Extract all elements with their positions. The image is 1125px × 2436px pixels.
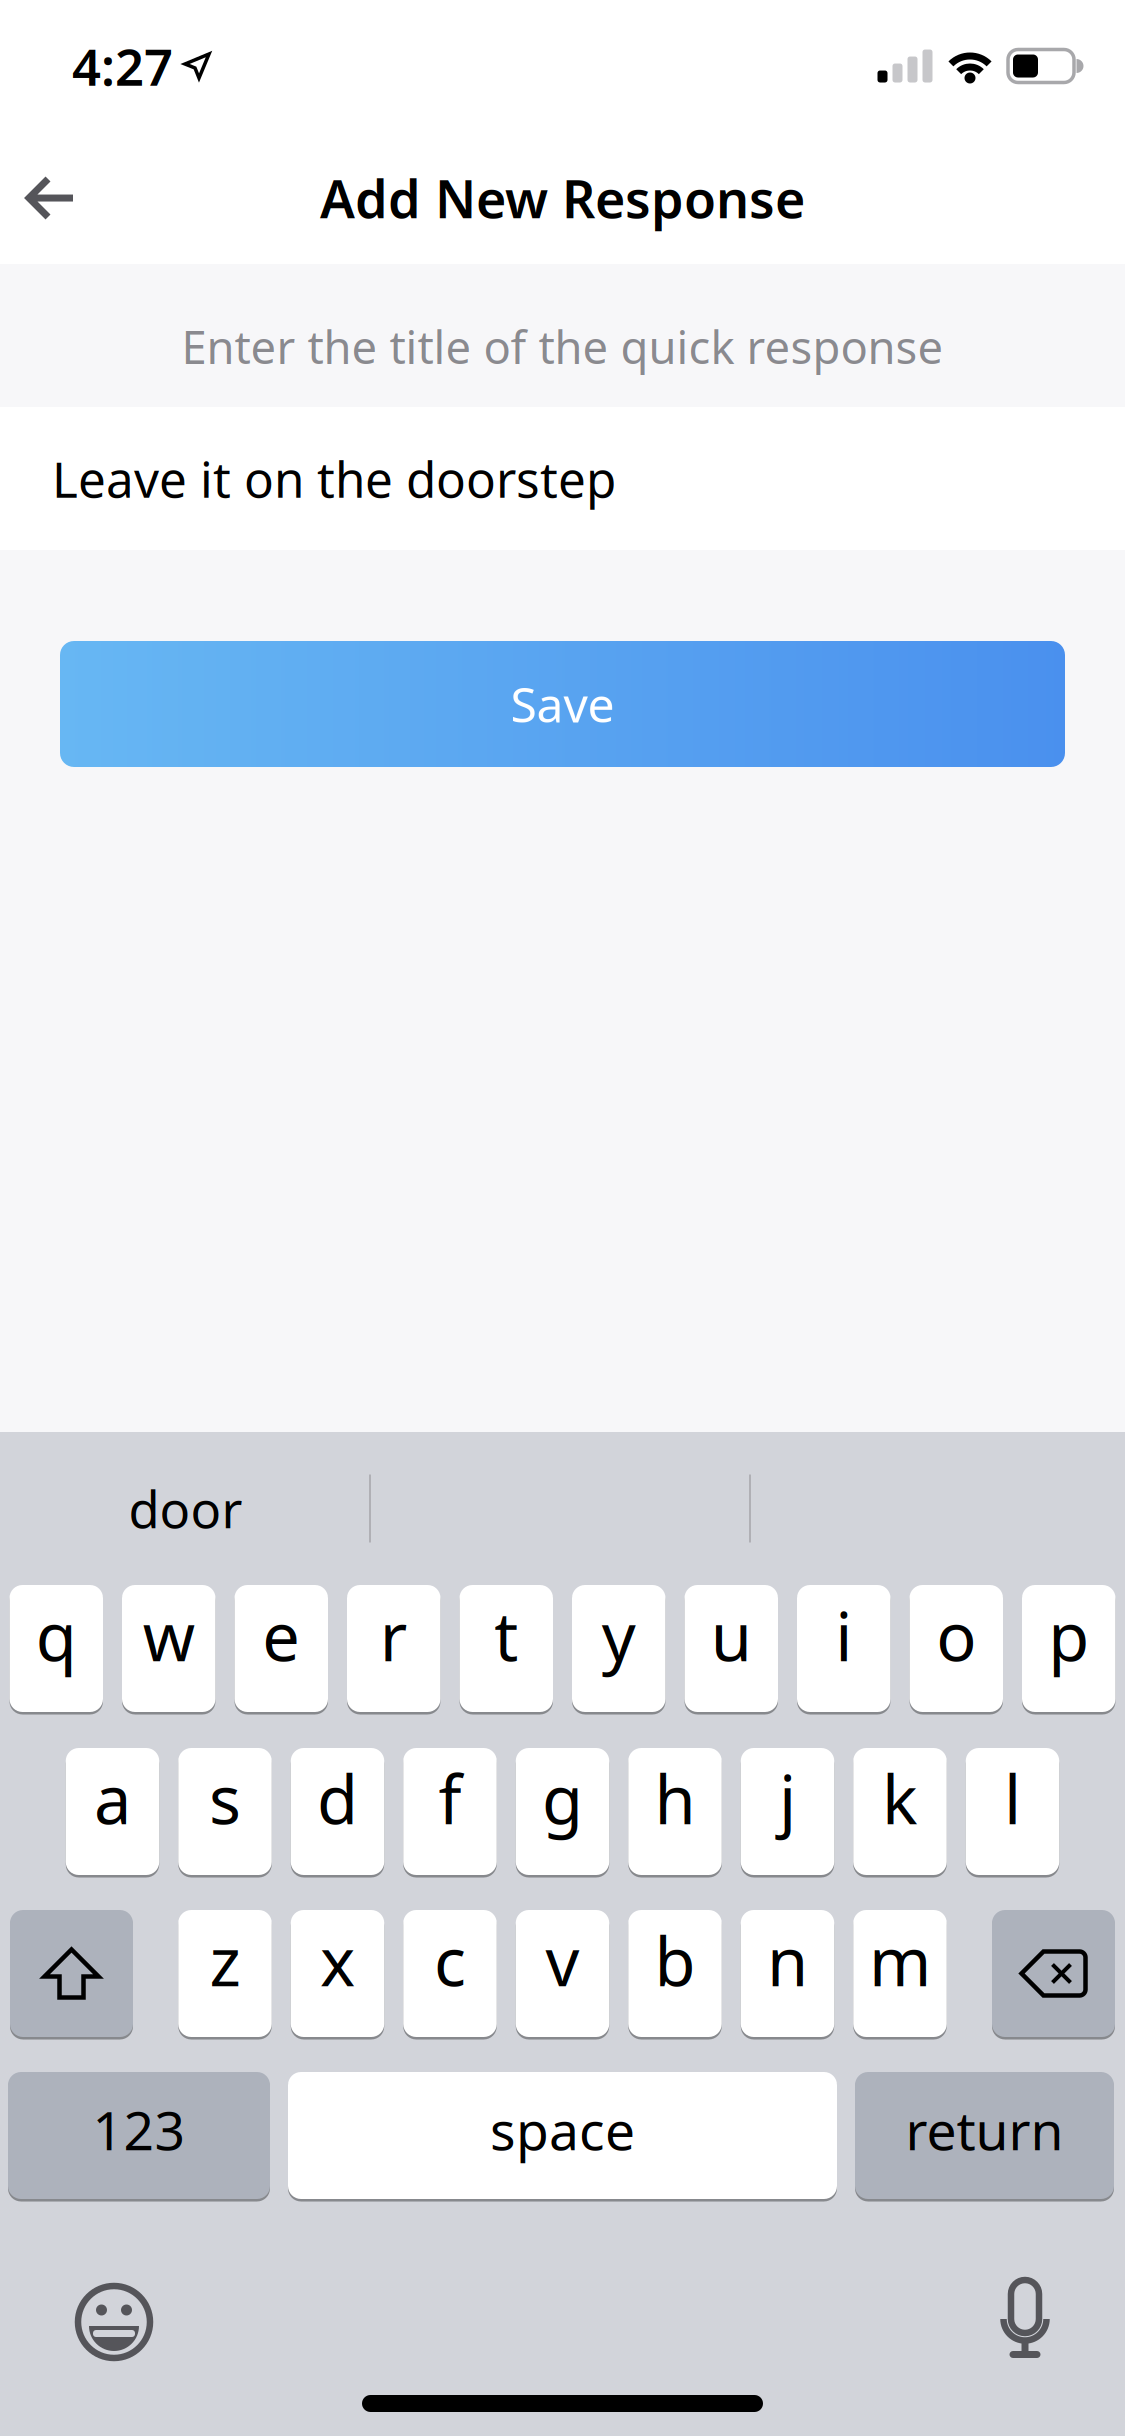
button[interactable]: z: [178, 1910, 272, 2037]
button[interactable]: g: [516, 1748, 609, 1875]
staticText: i: [835, 1591, 852, 1680]
staticText: Add New Response: [320, 163, 805, 233]
button[interactable]: Leave it on the doorstep: [0, 407, 1125, 550]
button[interactable]: return: [855, 2072, 1114, 2199]
button[interactable]: h: [628, 1748, 722, 1875]
button[interactable]: j: [741, 1748, 834, 1875]
button[interactable]: r: [347, 1585, 440, 1712]
staticText: j: [779, 1754, 796, 1843]
staticText: return: [905, 2094, 1063, 2165]
button[interactable]: n: [741, 1910, 834, 2037]
button[interactable]: Save: [60, 641, 1065, 767]
button[interactable]: b: [628, 1910, 722, 2037]
button[interactable]: 123: [8, 2072, 270, 2199]
button[interactable]: i: [797, 1585, 890, 1712]
staticText: u: [711, 1591, 752, 1680]
staticText: Leave it on the doorstep: [52, 446, 616, 511]
button[interactable]: f: [403, 1748, 497, 1875]
button[interactable]: door: [0, 1432, 371, 1585]
staticText: d: [317, 1754, 358, 1843]
staticText: o: [936, 1591, 976, 1680]
button[interactable]: p: [1022, 1585, 1115, 1712]
button[interactable]: [999, 2278, 1051, 2366]
button[interactable]: t: [459, 1585, 553, 1712]
button[interactable]: [25, 175, 77, 221]
button[interactable]: o: [909, 1585, 1003, 1712]
staticText: w: [143, 1591, 195, 1680]
staticText: Save: [510, 672, 614, 736]
button[interactable]: l: [966, 1748, 1059, 1875]
button[interactable]: u: [684, 1585, 778, 1712]
staticText: z: [209, 1916, 240, 2005]
button[interactable]: space: [288, 2072, 837, 2199]
staticText: 4:27: [72, 32, 173, 100]
staticText: c: [434, 1916, 466, 2005]
staticText: h: [654, 1754, 695, 1843]
button[interactable]: m: [853, 1910, 947, 2037]
staticText: e: [262, 1591, 300, 1680]
button[interactable]: c: [403, 1910, 497, 2037]
staticText: p: [1048, 1591, 1089, 1680]
staticText: s: [209, 1754, 241, 1843]
staticText: v: [545, 1916, 579, 2005]
button[interactable]: Enter the title of the quick response: [0, 264, 1125, 407]
staticText: 123: [92, 2094, 185, 2165]
staticText: r: [380, 1591, 408, 1680]
staticText: n: [767, 1916, 808, 2005]
button[interactable]: v: [516, 1910, 609, 2037]
button[interactable]: x: [291, 1910, 384, 2037]
staticText: x: [320, 1916, 355, 2005]
staticText: a: [94, 1754, 131, 1843]
staticText: y: [602, 1591, 636, 1680]
staticText: space: [490, 2094, 635, 2165]
staticText: t: [494, 1591, 518, 1680]
button[interactable]: d: [291, 1748, 384, 1875]
staticText: door: [128, 1475, 242, 1542]
button[interactable]: e: [234, 1585, 328, 1712]
button[interactable]: k: [853, 1748, 947, 1875]
staticText: Enter the title of the quick response: [181, 316, 943, 377]
button[interactable]: [10, 1910, 133, 2037]
staticText: b: [654, 1916, 695, 2005]
staticText: f: [438, 1754, 461, 1843]
button[interactable]: [76, 2284, 152, 2360]
staticText: k: [882, 1754, 918, 1843]
button[interactable]: w: [122, 1585, 215, 1712]
staticText: g: [542, 1754, 583, 1843]
button[interactable]: [992, 1910, 1115, 2037]
button[interactable]: a: [66, 1748, 159, 1875]
button[interactable]: q: [9, 1585, 103, 1712]
staticText: m: [869, 1916, 931, 2005]
staticText: l: [1004, 1754, 1021, 1843]
staticText: q: [36, 1591, 77, 1680]
button[interactable]: y: [572, 1585, 665, 1712]
button[interactable]: s: [178, 1748, 272, 1875]
